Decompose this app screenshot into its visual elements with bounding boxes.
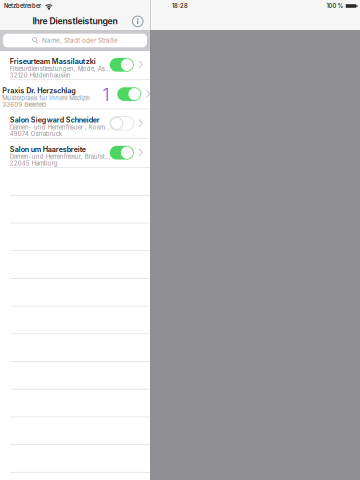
button[interactable]: Name, Stadt oder Straße [0,30,150,51]
staticText: 33609 Bielefeld [2,101,46,108]
staticText: 22045 Hamburg [10,160,58,167]
button[interactable]: Salon Siegward Schneider [0,110,150,139]
staticText: 18:28 [172,2,188,9]
button[interactable]: Info [132,15,150,27]
staticText: Ihre Dienstleistungen [32,16,117,26]
staticText: Salon Siegward Schneider [10,116,100,124]
staticText: Damen-und Herrenfriseur, Brautsty… [10,153,110,160]
staticText: 100 % [326,2,343,9]
staticText: Friseurteam Massilautzki [10,57,96,66]
staticText: Musterpraxis für Innere Medizin [2,94,90,102]
staticText: Netzbetreiber [4,2,41,9]
staticText: 49074 Osnabrück [10,130,62,138]
staticText: Salon um Haaresbreite [10,145,86,154]
staticText: 32120 Hiddenhausen [10,72,71,79]
staticText: 1 [102,83,109,105]
staticText: Praxis Dr. Herzschlag [2,86,76,95]
staticText: Damen- und Herrenfrisuer , Kosme… [10,124,110,131]
button[interactable]: Salon um Haaresbreite [0,139,150,168]
staticText: Name, Stadt oder Straße [42,37,118,44]
button[interactable]: Friseurteam Massilautzki [0,51,150,80]
button[interactable]: Praxis Dr. Herzschlag [0,80,150,110]
staticText: Friseurdienstleistungen, Mode, Ass… [10,65,110,72]
